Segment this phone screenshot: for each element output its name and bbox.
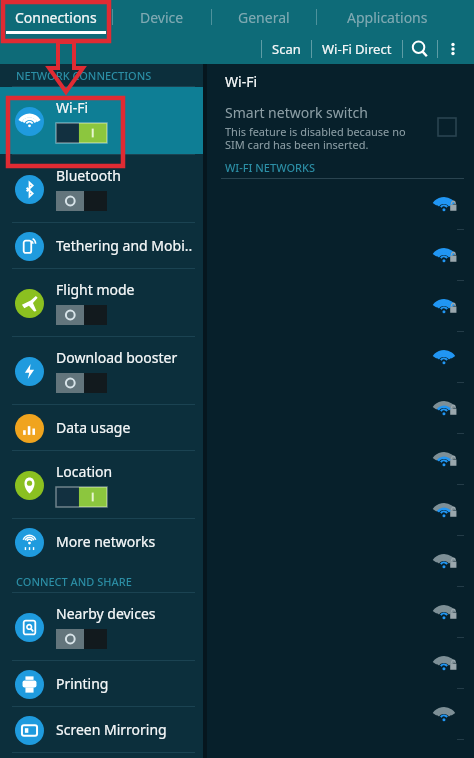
button[interactable]: Wi-Fi network 2 <box>207 230 474 280</box>
staticText: Wi-Fi Direct <box>322 40 392 58</box>
button[interactable]: General <box>212 0 316 34</box>
button[interactable] <box>56 487 107 507</box>
staticText: Wi-Fi <box>225 72 258 91</box>
staticText: NETWORK CONNECTIONS <box>16 68 152 83</box>
staticText: Tethering and Mobi.. <box>56 236 193 255</box>
staticText: Scan <box>272 40 301 58</box>
button[interactable]: More options <box>438 34 468 64</box>
button[interactable]: Wi-Fi network 6 <box>207 434 474 484</box>
button[interactable]: Search <box>403 34 437 64</box>
button[interactable]: Data usage <box>0 405 203 450</box>
staticText: Flight mode <box>56 280 135 299</box>
staticText: Location <box>56 462 113 481</box>
button[interactable]: Wi-Fi network 1 <box>207 179 474 229</box>
button[interactable]: Wi-Fi network 11 <box>207 689 474 739</box>
button[interactable]: Wi-Fi network 3 <box>207 281 474 331</box>
button[interactable]: Flight mode <box>0 269 203 336</box>
staticText: Nearby devices <box>56 604 156 623</box>
button[interactable] <box>56 373 107 393</box>
staticText: Connections <box>15 8 97 27</box>
staticText: Smart network switch <box>225 103 368 122</box>
button[interactable] <box>56 191 107 211</box>
button[interactable]: Screen Mirroring <box>0 707 203 752</box>
button[interactable] <box>438 118 456 136</box>
button[interactable]: More networks <box>0 519 203 564</box>
button[interactable]: Scan <box>262 36 311 62</box>
staticText: General <box>238 8 290 27</box>
button[interactable] <box>56 123 107 143</box>
button[interactable]: Connections <box>0 0 112 34</box>
button[interactable]: Nearby devices <box>0 593 203 660</box>
button[interactable]: Wi-Fi Direct <box>312 36 402 62</box>
staticText: This feature is disabled because no SIM … <box>225 124 428 152</box>
button[interactable]: Bluetooth <box>0 155 203 222</box>
staticText: Bluetooth <box>56 166 121 185</box>
button[interactable]: Device <box>113 0 211 34</box>
button[interactable]: Wi-Fi network 4 <box>207 332 474 382</box>
button[interactable] <box>56 305 107 325</box>
staticText: Device <box>140 8 184 27</box>
button[interactable]: Download booster <box>0 337 203 404</box>
staticText: Applications <box>347 8 428 27</box>
button[interactable]: Wi-Fi network 9 <box>207 587 474 637</box>
staticText: Wi-Fi <box>56 98 89 117</box>
staticText: CONNECT AND SHARE <box>16 574 132 589</box>
staticText: Download booster <box>56 348 178 367</box>
button[interactable] <box>56 629 107 649</box>
button[interactable]: Applications <box>317 0 457 34</box>
staticText: Screen Mirroring <box>56 720 167 739</box>
button[interactable]: Wi-Fi <box>0 87 203 154</box>
button[interactable]: Wi-Fi network 5 <box>207 383 474 433</box>
staticText: Data usage <box>56 418 131 437</box>
button[interactable]: Wi-Fi network 7 <box>207 485 474 535</box>
staticText: More networks <box>56 532 156 551</box>
button[interactable]: Wi-Fi network 8 <box>207 536 474 586</box>
staticText: WI-FI NETWORKS <box>225 160 316 175</box>
button[interactable]: Tethering and Mobi.. <box>0 223 203 268</box>
button[interactable]: Wi-Fi network 10 <box>207 638 474 688</box>
button[interactable]: Smart network switch <box>207 98 474 156</box>
button[interactable]: Printing <box>0 661 203 706</box>
staticText: Printing <box>56 674 109 693</box>
button[interactable]: Location <box>0 451 203 518</box>
